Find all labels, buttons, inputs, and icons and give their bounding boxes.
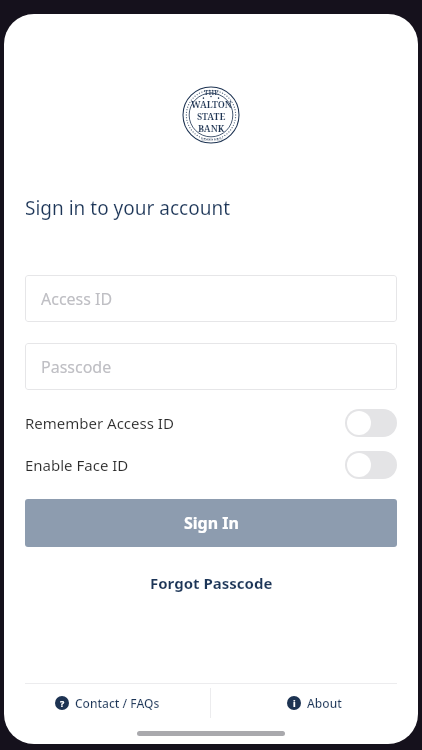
button[interactable]: Access ID: [25, 275, 397, 322]
staticText: SINCE 1902: [201, 137, 223, 142]
staticText: ?: [60, 697, 65, 709]
staticText: Forgot Passcode: [150, 573, 273, 593]
staticText: BANK: [198, 122, 225, 134]
staticText: Contact / FAQs: [75, 695, 160, 711]
staticText: Sign in to your account: [25, 195, 231, 221]
staticText: About: [307, 695, 342, 711]
button[interactable]: About: [211, 684, 418, 722]
staticText: STATE: [197, 110, 226, 122]
button[interactable]: Enable Face ID: [25, 444, 397, 486]
staticText: THE: [204, 88, 219, 98]
button[interactable]: Forgot Passcode: [142, 569, 281, 597]
staticText: Passcode: [41, 356, 112, 378]
staticText: Remember Access ID: [25, 413, 345, 433]
staticText: i: [293, 697, 296, 709]
staticText: WALTON: [191, 98, 232, 110]
button[interactable]: Remember Access ID: [25, 402, 397, 444]
button[interactable]: Contact and FAQs: [4, 684, 210, 722]
staticText: Enable Face ID: [25, 455, 345, 475]
other: About: [287, 696, 301, 710]
button[interactable]: Passcode: [25, 343, 397, 390]
staticText: Access ID: [41, 288, 113, 310]
other: Contact and FAQs: [55, 696, 69, 710]
button[interactable]: Sign In: [25, 499, 397, 547]
staticText: Sign In: [184, 512, 239, 534]
